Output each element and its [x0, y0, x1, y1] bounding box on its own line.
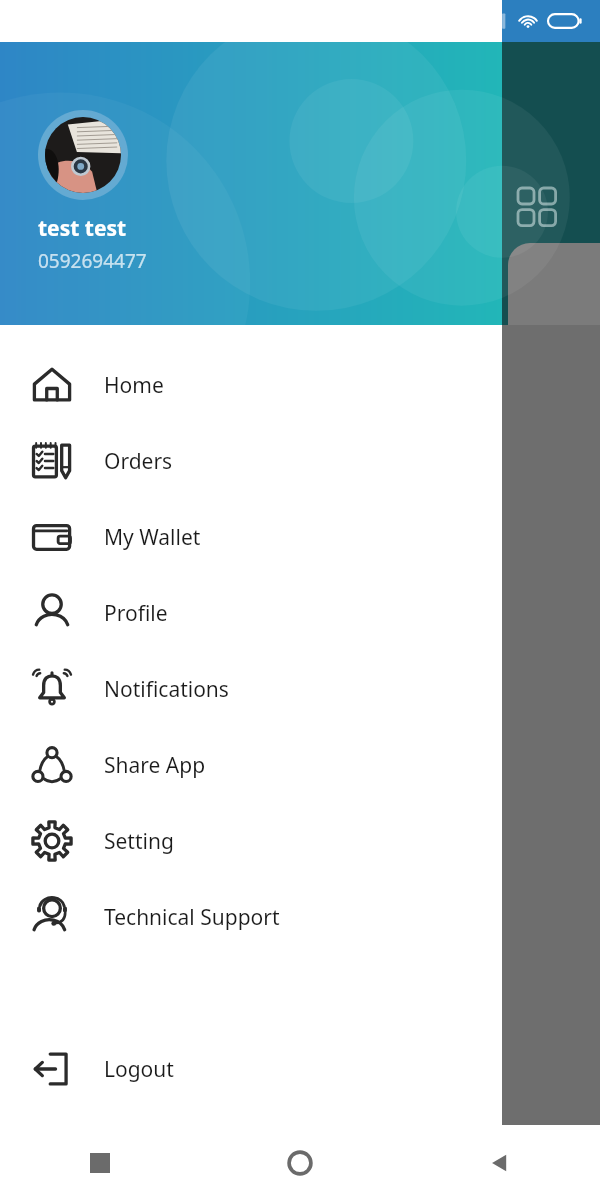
- staticText: 0592694477: [38, 248, 147, 274]
- staticText: Technical Support: [104, 903, 280, 932]
- button[interactable]: Orders: [0, 423, 502, 499]
- button[interactable]: Menu grid: [518, 188, 558, 228]
- button[interactable]: Logout: [0, 1031, 502, 1107]
- staticText: Profile: [104, 599, 168, 628]
- staticText: Setting: [104, 827, 174, 856]
- staticText: My Wallet: [104, 523, 201, 552]
- staticText: Home: [104, 371, 164, 400]
- button[interactable]: Home: [200, 1125, 400, 1200]
- button[interactable]: Recent apps: [0, 1125, 200, 1200]
- button[interactable]: Home: [0, 347, 502, 423]
- staticText: Orders: [104, 447, 173, 476]
- button[interactable]: Back: [400, 1125, 600, 1200]
- button[interactable]: Setting: [0, 803, 502, 879]
- button[interactable]: Technical Support: [0, 879, 502, 955]
- staticText: test test: [38, 214, 127, 243]
- button[interactable]: Share App: [0, 727, 502, 803]
- button[interactable]: My Wallet: [0, 499, 502, 575]
- staticText: Notifications: [104, 675, 229, 704]
- button[interactable]: Profile: [0, 575, 502, 651]
- button[interactable]: Notifications: [0, 651, 502, 727]
- staticText: Logout: [104, 1055, 174, 1084]
- button[interactable]: Profile photo: [38, 110, 128, 200]
- staticText: Share App: [104, 751, 206, 780]
